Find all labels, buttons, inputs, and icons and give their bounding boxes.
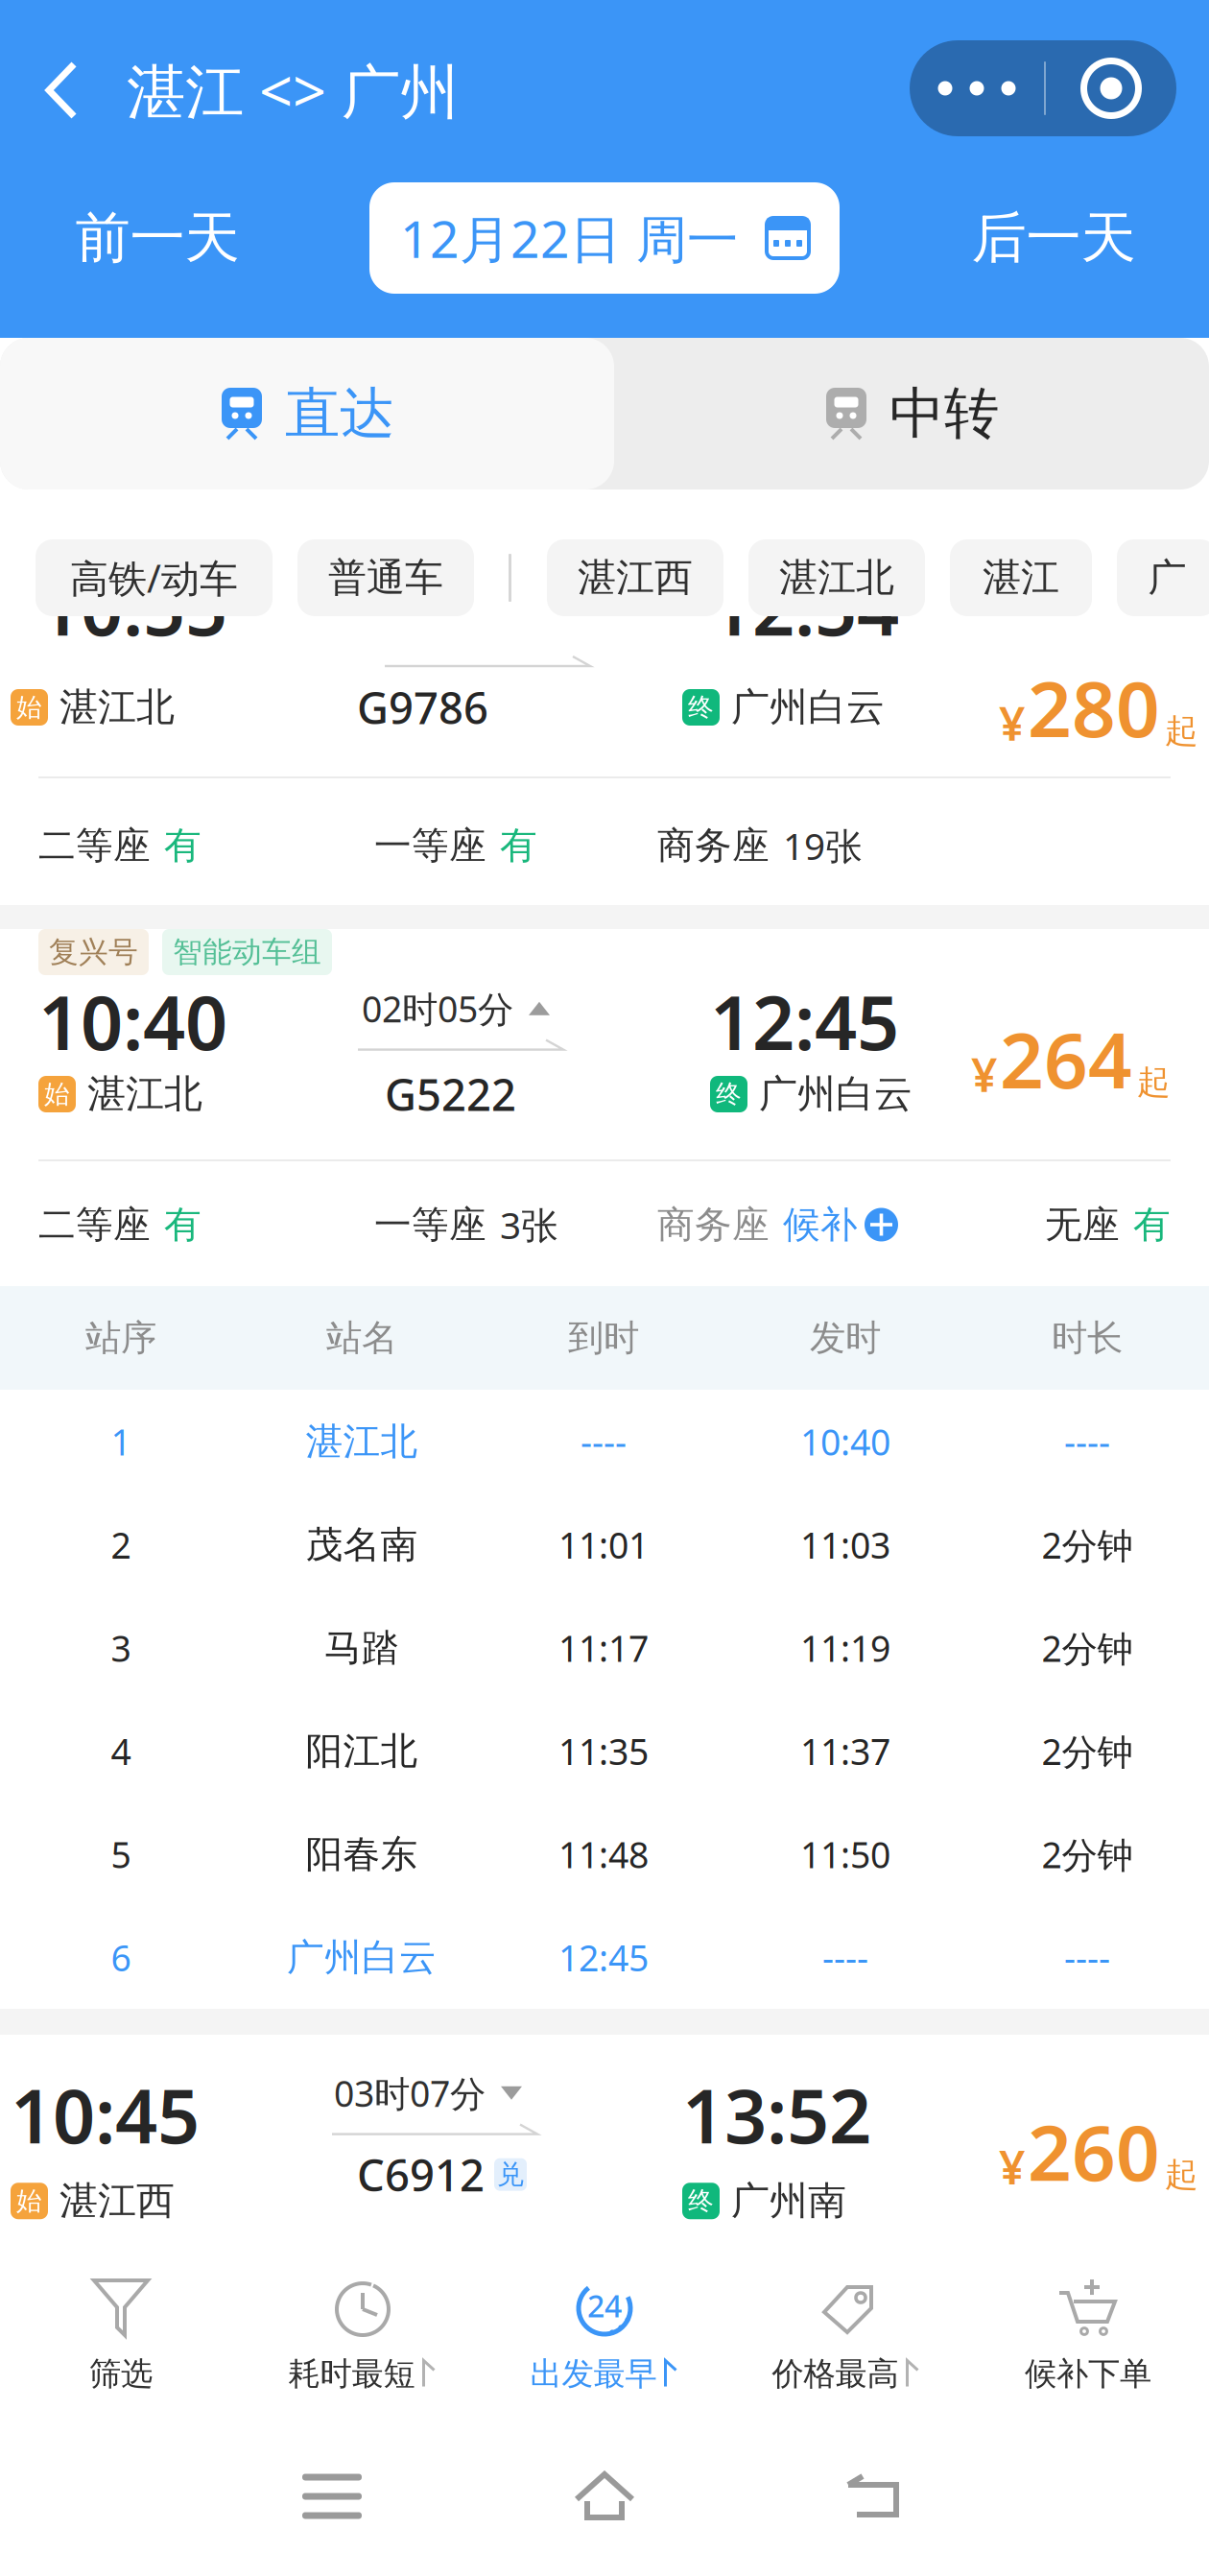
staticText: 起 <box>1165 2154 1198 2195</box>
staticText: ¥ <box>971 1044 997 1105</box>
staticText: 19张 <box>783 821 863 870</box>
staticText: 阳春东 <box>306 1832 418 1877</box>
staticText: 广 <box>1148 554 1186 601</box>
staticText: 复兴号 <box>49 934 138 970</box>
staticText: 260 <box>1028 2100 1160 2202</box>
staticText: 终 <box>688 2185 714 2217</box>
staticText: 起 <box>1165 711 1198 752</box>
button[interactable]: 湛江西 <box>547 539 723 616</box>
staticText: 一等座 <box>374 1202 486 1247</box>
staticText: 13:52 <box>682 2065 871 2164</box>
staticText: 12:45 <box>558 1934 649 1981</box>
staticText: 发时 <box>810 1316 881 1360</box>
staticText: 筛选 <box>89 2354 153 2394</box>
button[interactable]: 直达 <box>0 338 614 489</box>
staticText: 出发最早 <box>530 2354 657 2394</box>
staticText: 11:48 <box>558 1830 649 1878</box>
staticText: 24 <box>587 2285 622 2326</box>
staticText: 广州白云 <box>287 1935 437 1980</box>
staticText: 直达 <box>285 380 394 447</box>
staticText: ---- <box>1064 1934 1110 1981</box>
staticText: 候补下单 <box>1025 2354 1151 2394</box>
staticText: 280 <box>1028 656 1160 758</box>
button[interactable]: 湛江北 <box>748 539 925 616</box>
button[interactable]: 12月22日 周一 <box>369 182 840 294</box>
staticText: 始 <box>16 2185 42 2217</box>
staticText: 广州白云 <box>759 1071 913 1118</box>
staticText: 湛江北 <box>306 1419 418 1464</box>
staticText: 有 <box>164 823 201 868</box>
staticText: 后一天 <box>972 204 1136 272</box>
staticText: 6 <box>111 1934 131 1981</box>
button[interactable]: 湛江 <box>950 539 1092 616</box>
staticText: 2分钟 <box>1042 1727 1133 1775</box>
button[interactable]: 前一天 <box>13 182 301 294</box>
button[interactable]: 高铁/动车 <box>36 539 273 616</box>
button[interactable]: 普通车 <box>297 539 474 616</box>
staticText: 候补 <box>783 1202 858 1247</box>
staticText: 2分钟 <box>1042 1521 1133 1569</box>
staticText: 商务座 <box>657 1202 770 1247</box>
staticText: 2 <box>111 1521 131 1569</box>
staticText: ¥ <box>999 692 1025 754</box>
button[interactable]: 价格最高 <box>725 2251 967 2419</box>
staticText: 无座 <box>1045 1202 1120 1247</box>
button[interactable]: Back <box>806 2444 940 2549</box>
button[interactable]: 广 <box>1117 539 1209 616</box>
staticText: 11:37 <box>800 1727 890 1775</box>
staticText: 普通车 <box>328 554 443 601</box>
staticText: 264 <box>1000 1008 1132 1110</box>
staticText: 二等座 <box>38 1202 151 1247</box>
staticText: ¥ <box>999 2136 1025 2197</box>
staticText: 一等座 <box>374 823 486 868</box>
staticText: 始 <box>16 692 42 723</box>
staticText: 广州白云 <box>731 684 885 731</box>
button[interactable]: 筛选 <box>0 2251 242 2419</box>
staticText: 终 <box>688 692 714 723</box>
staticText: 10:40 <box>800 1418 890 1465</box>
staticText: 2分钟 <box>1042 1830 1133 1878</box>
staticText: C6912 <box>357 2146 485 2203</box>
staticText: 湛江 <> 广州 <box>127 51 459 129</box>
staticText: 始 <box>44 1078 70 1110</box>
staticText: 价格最高 <box>772 2354 899 2394</box>
staticText: 有 <box>164 1202 201 1247</box>
staticText: 茂名南 <box>306 1522 418 1568</box>
staticText: 到时 <box>568 1316 639 1360</box>
staticText: 站序 <box>85 1316 156 1360</box>
staticText: 11:03 <box>800 1521 890 1569</box>
staticText: 11:50 <box>800 1830 890 1878</box>
staticText: 1 <box>111 1418 131 1465</box>
staticText: ---- <box>822 1934 868 1981</box>
button[interactable]: 24 <box>484 2251 725 2419</box>
staticText: 兑 <box>497 2158 524 2191</box>
staticText: G5222 <box>385 1065 516 1123</box>
staticText: 湛江北 <box>59 684 175 731</box>
button[interactable]: 候补下单 <box>967 2251 1209 2419</box>
staticText: 商务座 <box>657 823 770 868</box>
button[interactable]: 后一天 <box>910 182 1197 294</box>
button[interactable]: 耗时最短 <box>242 2251 484 2419</box>
staticText: 11:17 <box>558 1624 649 1672</box>
staticText: 智能动车组 <box>173 934 321 970</box>
staticText: 湛江 <box>983 554 1059 601</box>
staticText: 2分钟 <box>1042 1624 1133 1672</box>
button[interactable]: More options <box>910 40 1176 136</box>
staticText: 11:01 <box>558 1521 649 1569</box>
staticText: 前一天 <box>75 204 239 272</box>
staticText: 10:45 <box>11 2065 200 2164</box>
staticText: 湛江西 <box>578 554 693 601</box>
staticText: 湛江北 <box>779 554 894 601</box>
staticText: 11:19 <box>800 1624 890 1672</box>
staticText: 广州南 <box>731 2177 846 2225</box>
staticText: 高铁/动车 <box>70 552 238 603</box>
staticText: 03时07分 <box>334 2069 486 2117</box>
staticText: 11:35 <box>558 1727 649 1775</box>
staticText: 站名 <box>326 1316 397 1360</box>
button[interactable]: Home <box>537 2444 672 2549</box>
staticText: 10:40 <box>38 972 227 1071</box>
staticText: 起 <box>1137 1062 1171 1103</box>
button[interactable]: Recent apps <box>265 2444 399 2549</box>
button[interactable]: 中转 <box>614 338 1209 489</box>
button[interactable]: Back <box>42 44 580 136</box>
